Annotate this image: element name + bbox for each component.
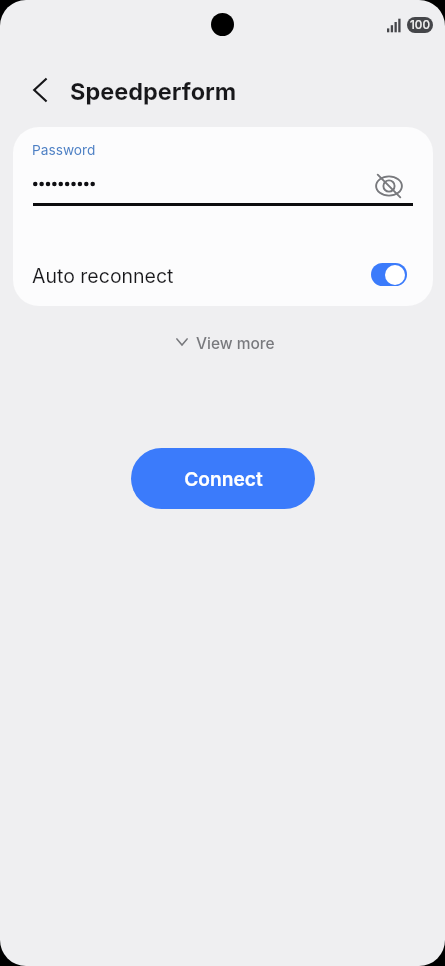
button[interactable]: View more [166,330,283,357]
staticText: Auto reconnect [32,264,174,288]
button[interactable]: Show password [366,163,412,209]
button[interactable]: Auto reconnect toggle [371,263,407,286]
button[interactable]: Back [25,75,55,105]
staticText: Connect [184,467,263,490]
button[interactable]: Connect [131,448,315,509]
staticText: Password [32,142,96,159]
staticText: View more [196,334,275,353]
staticText: 100 [410,18,430,32]
button[interactable] [13,248,433,306]
staticText: Speedperform [70,77,237,105]
